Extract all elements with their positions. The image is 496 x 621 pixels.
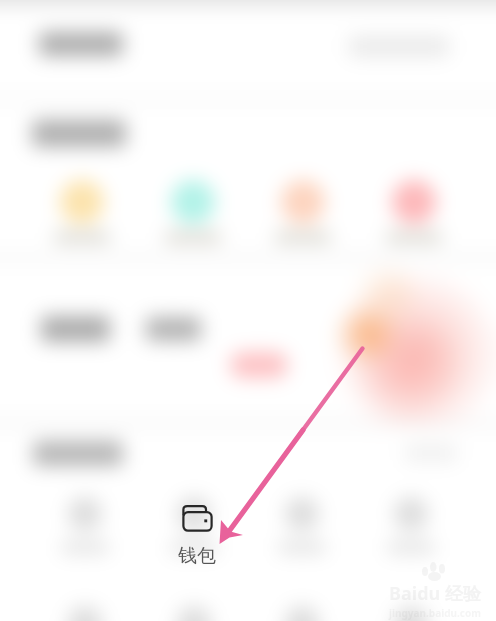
- staticText: 钱包: [178, 544, 216, 568]
- button[interactable]: [165, 180, 221, 243]
- button[interactable]: [171, 497, 217, 553]
- staticText: Baidu 经验: [389, 581, 481, 606]
- button[interactable]: [386, 180, 442, 243]
- button[interactable]: [171, 606, 217, 621]
- button[interactable]: [54, 180, 110, 243]
- button[interactable]: [279, 497, 325, 553]
- button[interactable]: [388, 497, 434, 553]
- button[interactable]: 钱包: [166, 505, 228, 568]
- button[interactable]: [388, 606, 434, 621]
- button[interactable]: [62, 497, 108, 553]
- button[interactable]: [279, 606, 325, 621]
- staticText: jingyan.baidu.com: [389, 606, 481, 620]
- button[interactable]: [275, 180, 331, 243]
- button[interactable]: [62, 606, 108, 621]
